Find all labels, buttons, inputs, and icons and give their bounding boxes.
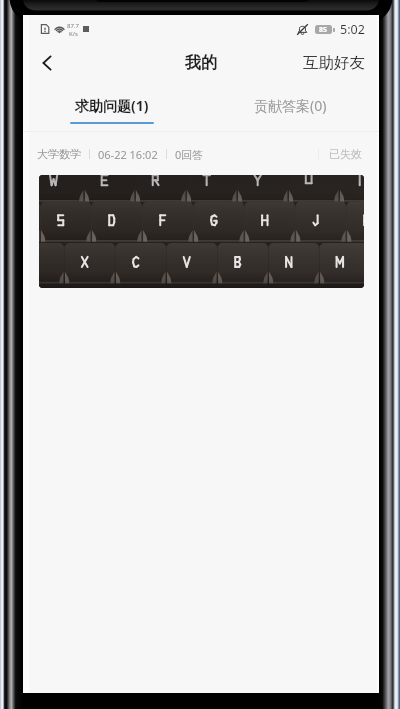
button[interactable]: 求助问题(1) bbox=[23, 85, 201, 131]
staticText: 0回答 bbox=[175, 147, 204, 162]
button[interactable]: Back bbox=[29, 45, 65, 81]
staticText: 已失效 bbox=[329, 147, 362, 161]
staticText: 87.7 bbox=[67, 22, 79, 30]
staticText: K/s bbox=[69, 30, 78, 37]
staticText: 5:02 bbox=[340, 21, 365, 38]
staticText: 求助问题(1) bbox=[75, 96, 149, 115]
staticText: 我的 bbox=[185, 53, 217, 73]
staticText: 06-22 16:02 bbox=[98, 147, 158, 162]
staticText: 互助好友 bbox=[303, 53, 365, 73]
staticText: 大学数学 bbox=[37, 147, 81, 161]
button[interactable]: 互助好友 bbox=[303, 40, 365, 85]
button[interactable]: Question image bbox=[39, 175, 364, 288]
staticText: 贡献答案(0) bbox=[254, 96, 327, 115]
staticText: 85 bbox=[319, 25, 328, 34]
button[interactable]: 贡献答案(0) bbox=[201, 85, 379, 131]
